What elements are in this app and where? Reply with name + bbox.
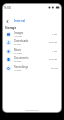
staticText: Internal <box>14 19 26 23</box>
button[interactable]: Documents <box>3 55 61 63</box>
other: Back <box>5 19 9 23</box>
staticText: 46 files <box>14 43 21 46</box>
staticText: Documents <box>14 56 29 60</box>
button[interactable]: Images <box>3 30 61 38</box>
staticText: Recordings <box>14 65 29 69</box>
staticText: 2 GB <box>52 33 58 36</box>
staticText: 96 MB <box>51 67 58 70</box>
staticText: 9:30 <box>4 5 11 10</box>
button[interactable]: Music <box>3 47 61 55</box>
button[interactable]: Back <box>3 18 61 24</box>
staticText: Images <box>14 31 24 35</box>
staticText: 312 files <box>14 52 23 55</box>
staticText: 840 MB <box>49 41 58 44</box>
staticText: 260 MB <box>49 58 58 61</box>
staticText: Downloads <box>14 39 29 43</box>
button[interactable]: Downloads <box>3 38 61 46</box>
staticText: 128 files <box>14 35 23 38</box>
button[interactable]: Recordings <box>3 64 61 72</box>
staticText: Music <box>14 48 22 52</box>
staticText: Storage <box>5 26 17 30</box>
staticText: 1 GB <box>52 50 58 53</box>
staticText: 12 files <box>14 69 21 72</box>
staticText: 88 files <box>14 60 21 63</box>
